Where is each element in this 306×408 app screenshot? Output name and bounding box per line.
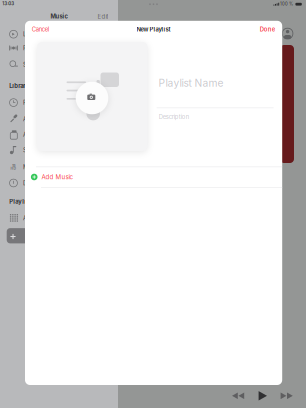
staticText: Add Music bbox=[41, 173, 73, 181]
button[interactable]: Search bbox=[0, 0, 306, 408]
staticText: All Playlists bbox=[23, 214, 52, 222]
button[interactable]: Recently Added bbox=[0, 0, 306, 408]
button[interactable]: Add Music bbox=[0, 0, 306, 408]
button[interactable]: Downloaded bbox=[0, 0, 306, 408]
staticText: Songs bbox=[23, 146, 41, 154]
staticText: Downloaded bbox=[23, 179, 57, 187]
staticText: 111 bbox=[12, 164, 15, 168]
staticText: Artists bbox=[23, 115, 40, 123]
button[interactable]: Description bbox=[0, 0, 306, 408]
button[interactable]: Choose artwork bbox=[0, 0, 306, 408]
staticText: 13:03 bbox=[2, 1, 14, 6]
button[interactable]: Edit bbox=[0, 0, 306, 408]
button[interactable]: Next bbox=[0, 0, 306, 408]
button[interactable]: Artists bbox=[0, 0, 306, 408]
staticText: Edit bbox=[97, 13, 108, 20]
staticText: Recently Added bbox=[23, 99, 66, 106]
button[interactable]: Radio bbox=[0, 0, 306, 408]
staticText: Music bbox=[50, 13, 67, 20]
button[interactable]: New Playlist bbox=[0, 0, 306, 408]
staticText: 100 % bbox=[280, 1, 293, 7]
staticText: Radio bbox=[23, 44, 39, 52]
staticText: Cancel bbox=[32, 26, 49, 33]
button[interactable]: Previous bbox=[0, 0, 306, 408]
button[interactable]: Albums bbox=[0, 0, 306, 408]
staticText: Search bbox=[23, 61, 41, 68]
staticText: HD bbox=[10, 166, 16, 171]
button[interactable]: Done bbox=[0, 0, 306, 408]
staticText: Albums bbox=[23, 131, 43, 138]
button[interactable]: All Playlists bbox=[0, 0, 306, 408]
button[interactable]: 111 bbox=[0, 0, 306, 408]
button[interactable]: Account bbox=[0, 0, 306, 408]
button[interactable]: Songs bbox=[0, 0, 306, 408]
staticText: Library bbox=[9, 82, 29, 89]
staticText: Done bbox=[260, 26, 275, 33]
staticText: Listen Now bbox=[23, 31, 52, 38]
button[interactable]: Playlist Name bbox=[0, 0, 306, 408]
staticText: New Playlist bbox=[136, 26, 170, 33]
staticText: Made for You bbox=[23, 163, 61, 171]
staticText: Description bbox=[159, 113, 189, 120]
button[interactable]: Listen Now bbox=[0, 0, 306, 408]
button[interactable]: Play bbox=[0, 0, 306, 408]
staticText: Playlist Name bbox=[158, 77, 223, 89]
button[interactable]: Cancel bbox=[0, 0, 306, 408]
staticText: Playlists bbox=[9, 198, 34, 205]
